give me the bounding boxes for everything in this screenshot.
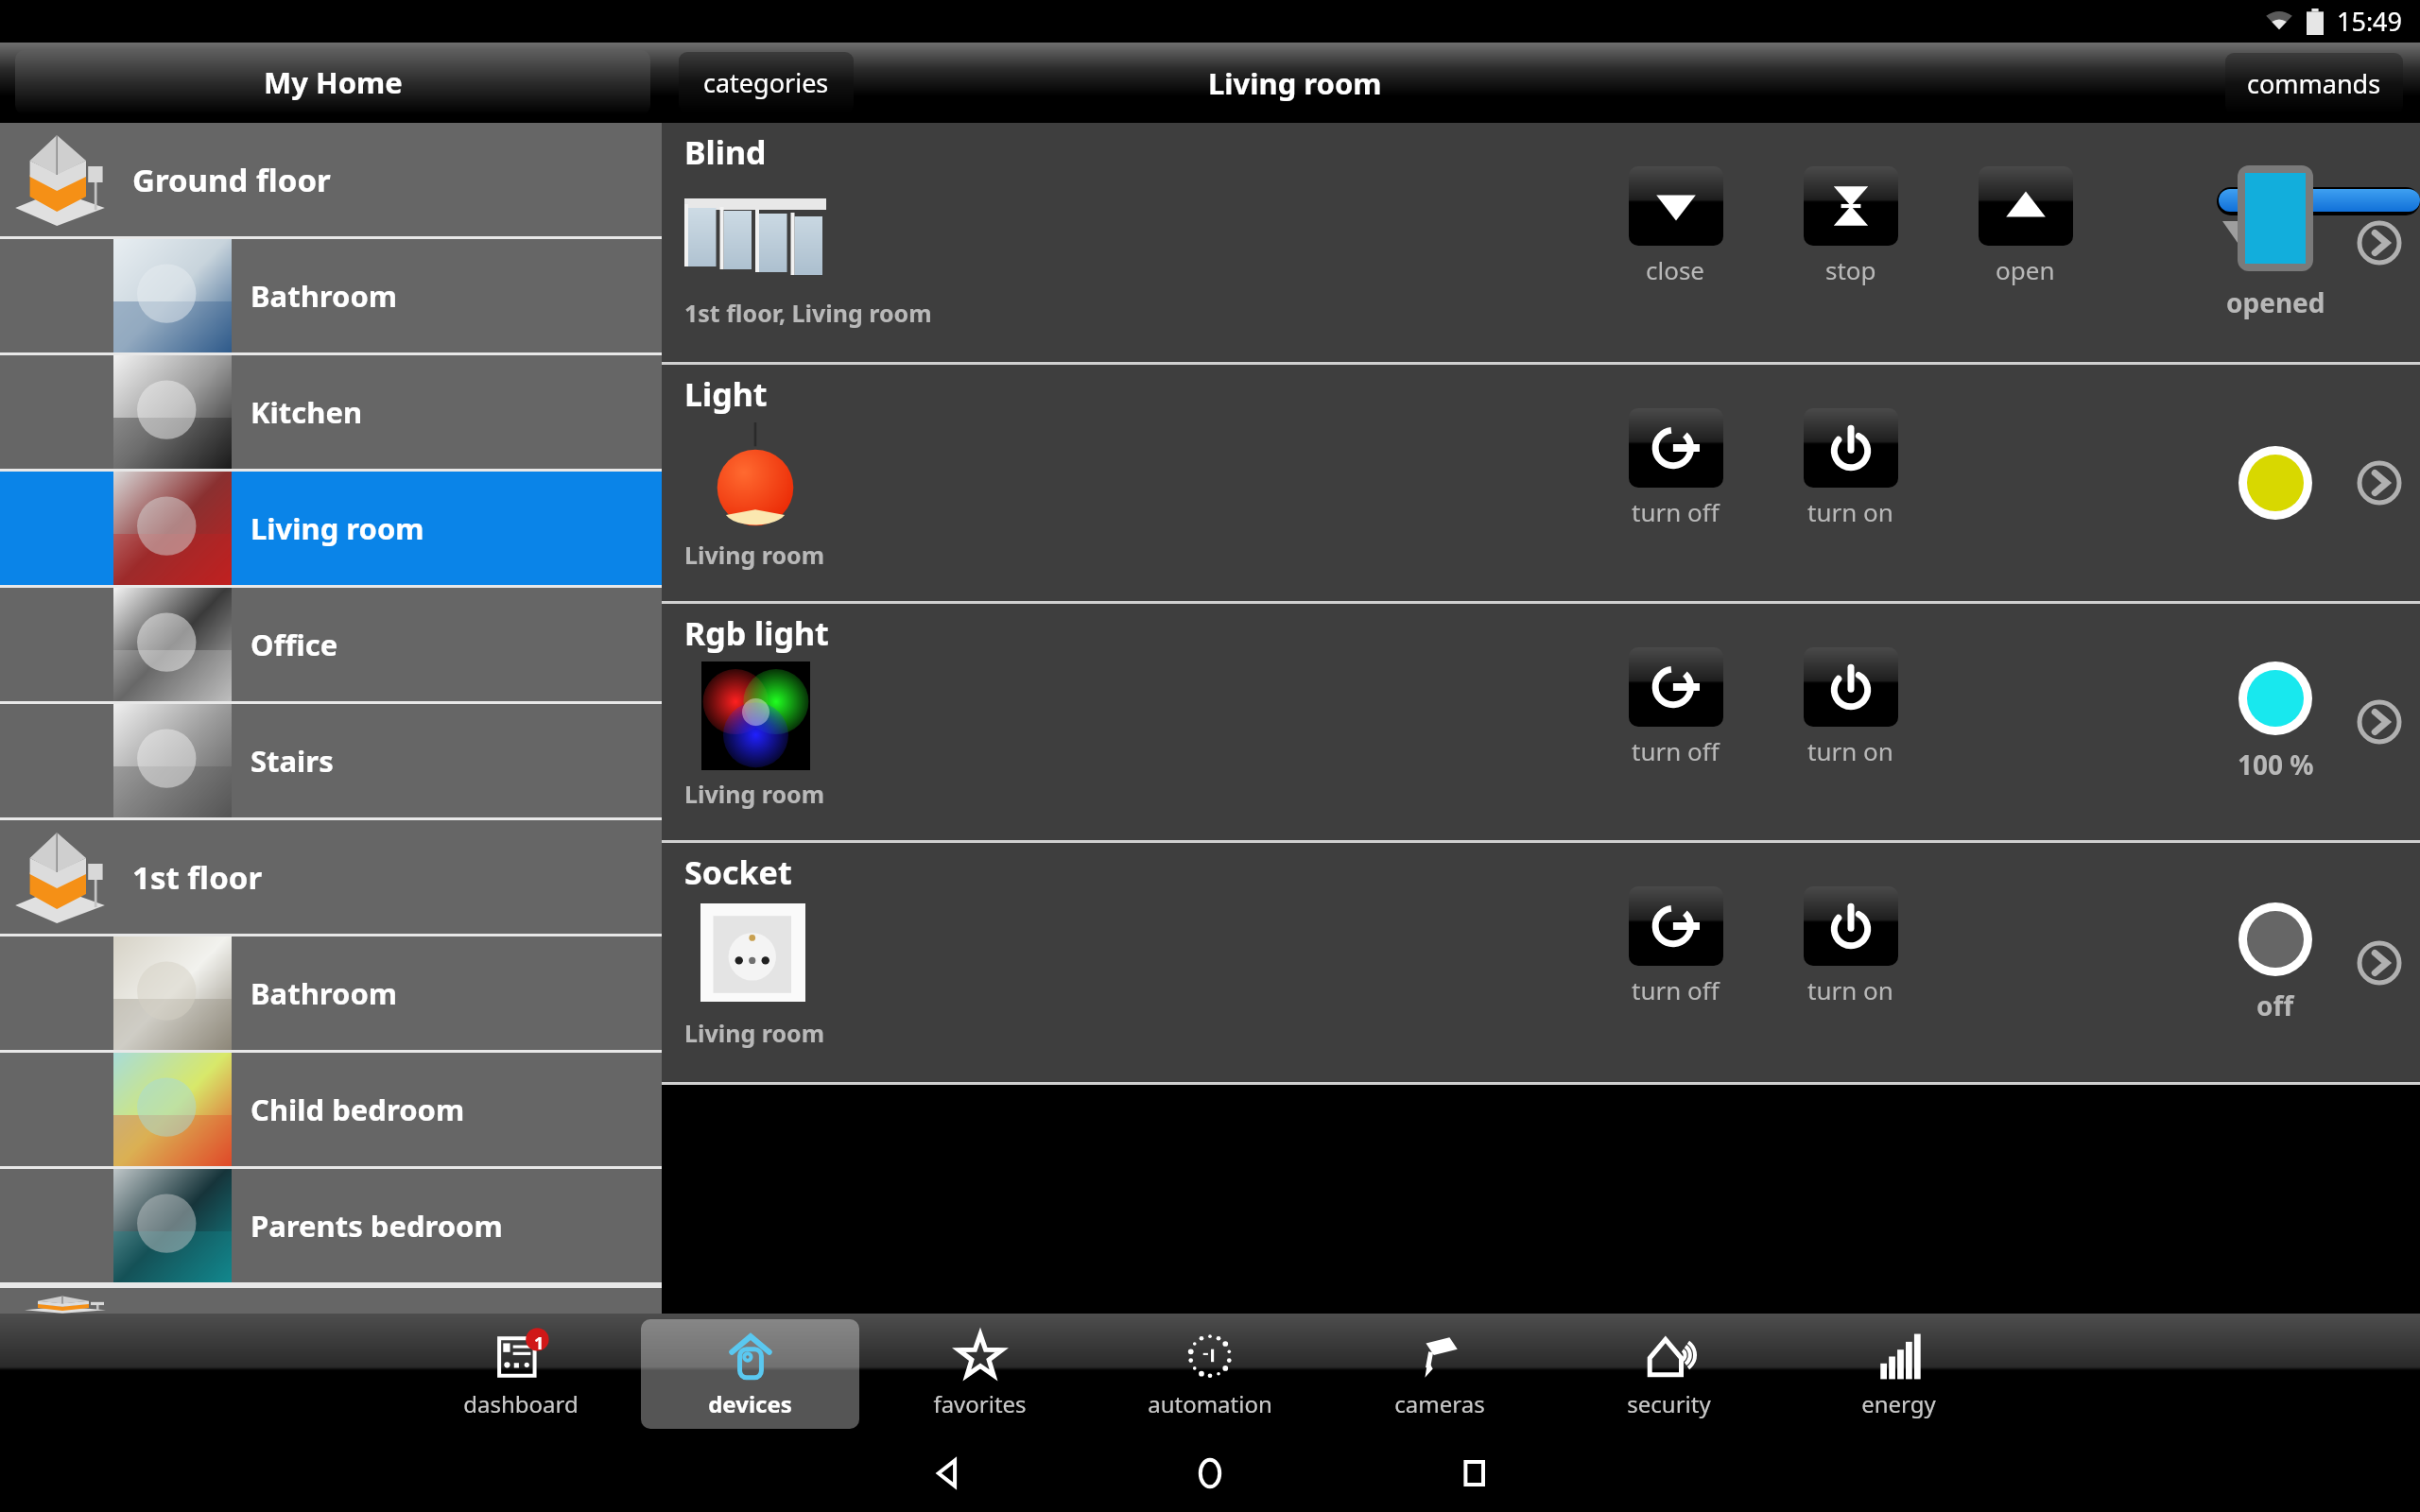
button[interactable]: Turn off [1629,886,1723,966]
staticText: Rgb light [684,611,829,655]
staticText: favorites [933,1388,1027,1419]
button[interactable]: Turn on [1804,886,1898,966]
button[interactable]: Open blind [1979,166,2073,246]
staticText: Office [251,625,338,664]
button[interactable] [2238,902,2312,976]
staticText: Bathroom [251,276,397,316]
staticText: turn off [1632,973,1720,1006]
staticText: 15:49 [2337,4,2403,39]
button[interactable]: security [1560,1319,1778,1429]
staticText: 1st floor, Living room [684,297,932,329]
button[interactable]: Office [0,588,662,701]
button[interactable]: Stairs [0,704,662,817]
staticText: off [2256,988,2294,1023]
button[interactable]: Home [1078,1445,1342,1502]
button[interactable]: devices [641,1319,859,1429]
staticText: opened [2226,284,2325,320]
button[interactable]: favorites [871,1319,1089,1429]
staticText: devices [708,1388,792,1419]
staticText: Light [684,372,768,416]
staticText: Kitchen [251,392,363,432]
staticText: commands [2247,66,2381,101]
staticText: 1 [534,1332,544,1355]
staticText: turn on [1807,495,1893,528]
staticText: Bathroom [251,973,397,1013]
staticText: 100 % [2238,747,2314,782]
button[interactable]: Details [2346,450,2412,516]
staticText: Socket [684,850,792,894]
staticText: close [1646,253,1705,286]
button[interactable] [2219,189,2420,212]
staticText: Living room [251,508,424,548]
button[interactable]: Turn off [1629,408,1723,488]
button[interactable]: Child bedroom [0,1053,662,1166]
staticText: Stairs [251,741,334,781]
button[interactable]: categories [679,52,854,112]
staticText: automation [1148,1388,1272,1419]
button[interactable]: My Home [15,50,650,114]
staticText: Living room [1208,63,1382,103]
button[interactable]: Turn on [1804,408,1898,488]
staticText: My Home [264,62,403,102]
button[interactable]: Bathroom [0,239,662,352]
button[interactable]: Details [2346,689,2412,755]
button[interactable] [2238,661,2312,735]
staticText: turn off [1632,495,1720,528]
staticText: stop [1825,253,1876,286]
button[interactable]: 1st floor [0,820,662,934]
staticText: cameras [1394,1388,1485,1419]
staticText: Ground floor [132,159,331,201]
staticText: Parents bedroom [251,1206,503,1246]
button[interactable]: Parents bedroom [0,1169,662,1282]
staticText: turn on [1807,734,1893,767]
staticText: categories [703,65,829,100]
button[interactable] [2245,173,2306,264]
staticText: Living room [684,539,825,571]
button[interactable]: Back [813,1445,1078,1502]
button[interactable]: Turn on [1804,647,1898,727]
staticText: energy [1861,1388,1936,1419]
button[interactable]: commands [2225,53,2403,113]
button[interactable]: Living room [0,472,662,585]
staticText: Child bedroom [251,1090,465,1129]
staticText: turn off [1632,734,1720,767]
staticText: Living room [684,1017,825,1049]
staticText: open [1996,253,2055,286]
button[interactable] [2238,446,2312,520]
button[interactable]: Ground floor [0,123,662,236]
staticText: dashboard [463,1388,579,1419]
button[interactable]: Details [2346,930,2412,996]
button[interactable]: 1 [412,1319,630,1429]
staticText: security [1627,1388,1711,1419]
button[interactable]: cameras [1330,1319,1548,1429]
button[interactable]: Recents [1342,1445,1607,1502]
staticText: 1st floor [132,856,263,899]
staticText: Living room [684,778,825,810]
button[interactable]: Details [2346,210,2412,276]
staticText: turn on [1807,973,1893,1006]
button[interactable]: automation [1100,1319,1319,1429]
button[interactable]: energy [1789,1319,2008,1429]
button[interactable]: Bathroom [0,936,662,1050]
button[interactable]: Stop blind [1804,166,1898,246]
button[interactable]: Kitchen [0,355,662,469]
button[interactable]: Close blind [1629,166,1723,246]
button[interactable]: Turn off [1629,647,1723,727]
staticText: Blind [684,130,767,174]
